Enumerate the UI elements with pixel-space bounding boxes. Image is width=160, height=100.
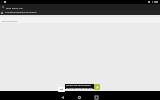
button[interactable]: Back <box>55 93 69 100</box>
button[interactable]: Navigate up <box>1 5 5 9</box>
button[interactable]: Recent apps <box>89 93 103 100</box>
staticText: Dig Tooth Job <box>2 19 18 22</box>
button[interactable]: Download card <box>58 87 65 92</box>
button[interactable]: Get it on Google Play <box>94 84 100 90</box>
staticText: Tap the APK file to install it on your A… <box>66 84 93 89</box>
staticText: storage.mobidroid.com/apps <box>5 11 37 14</box>
button[interactable]: Home <box>72 93 86 100</box>
button[interactable]: Tap the APK file to install it on your A… <box>65 84 94 89</box>
staticText: Real Piano HD <box>6 6 23 9</box>
